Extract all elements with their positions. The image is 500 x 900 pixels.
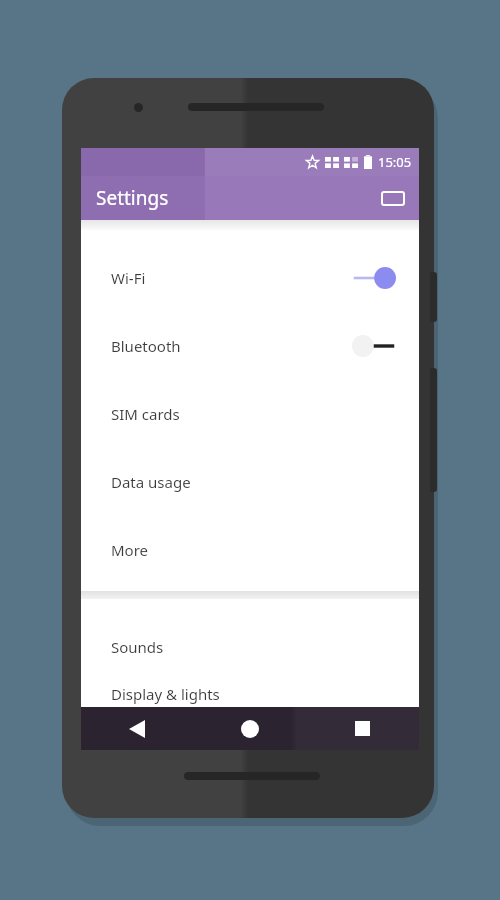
button[interactable]: Back: [81, 707, 193, 750]
button[interactable]: Display & lights: [81, 681, 419, 707]
button[interactable]: Bluetooth: [81, 312, 419, 380]
staticText: Bluetooth: [111, 336, 181, 356]
staticText: Sounds: [111, 637, 164, 657]
staticText: More: [111, 540, 149, 560]
button[interactable]: Sounds: [81, 613, 419, 681]
button[interactable]: Bluetooth toggle, off: [351, 332, 397, 360]
staticText: SIM cards: [111, 404, 180, 424]
button[interactable]: Home: [193, 707, 306, 750]
staticText: Settings: [96, 185, 169, 211]
button[interactable]: Recent apps: [306, 707, 419, 750]
staticText: Display & lights: [111, 684, 220, 704]
button[interactable]: SIM cards: [81, 380, 419, 448]
button[interactable]: Wi-Fi toggle, on: [351, 264, 397, 292]
button[interactable]: More: [81, 516, 419, 584]
button[interactable]: Overview: [375, 180, 411, 216]
staticText: 15:05: [378, 153, 412, 171]
button[interactable]: Wi-Fi: [81, 244, 419, 312]
staticText: Wi-Fi: [111, 268, 146, 288]
button[interactable]: Data usage: [81, 448, 419, 516]
staticText: Data usage: [111, 472, 191, 492]
